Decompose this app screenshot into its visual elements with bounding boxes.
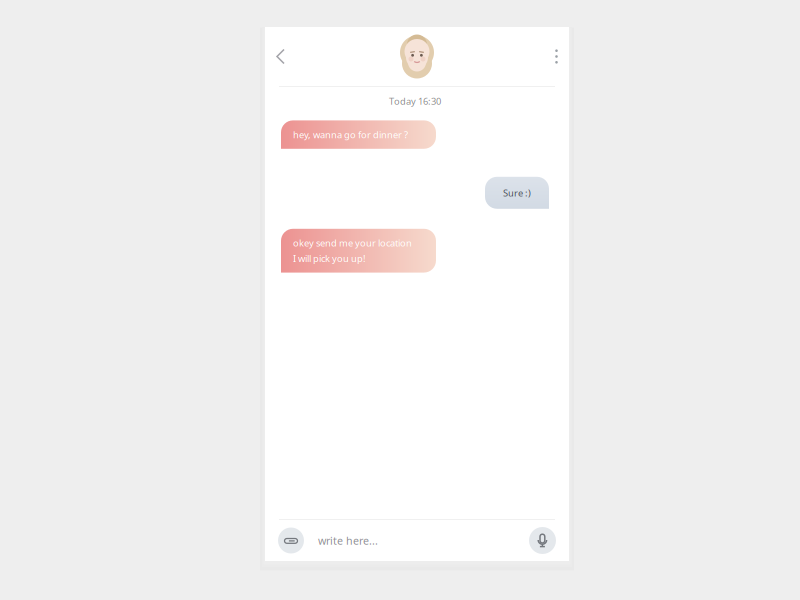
staticText: hey, wanna go for dinner ?: [293, 128, 408, 141]
button[interactable]: okey send me your location: [281, 229, 436, 273]
staticText: okey send me your location: [293, 237, 412, 249]
staticText: Sure :): [503, 187, 531, 199]
button[interactable]: hey, wanna go for dinner ?: [281, 120, 436, 149]
button[interactable]: Back: [276, 38, 306, 74]
staticText: I will pick you up!: [293, 252, 366, 265]
button[interactable]: Attach file: [278, 527, 304, 553]
staticText: write here...: [318, 533, 378, 548]
button[interactable]: write here...: [304, 520, 529, 560]
button[interactable]: More options: [528, 38, 558, 74]
button[interactable]: Sure :): [485, 177, 549, 209]
staticText: Today 16:30: [389, 95, 441, 107]
button[interactable]: Record voice message: [529, 527, 556, 554]
button[interactable]: Contact profile: [395, 34, 439, 78]
